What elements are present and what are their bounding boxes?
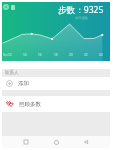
button[interactable]: 添加: [2, 77, 110, 90]
button[interactable]: Back: [80, 136, 92, 148]
staticText: 24: [99, 53, 103, 57]
staticText: 16: [38, 53, 42, 57]
staticText: 照顾多数: [19, 101, 41, 108]
staticText: 14: [23, 53, 27, 57]
staticText: 今日步数: [75, 16, 88, 20]
staticText: 20: [69, 53, 73, 57]
staticText: 联系人: [5, 70, 19, 76]
staticText: 添加: [18, 80, 29, 87]
button[interactable]: 照顾多数: [2, 96, 110, 112]
staticText: 6月12: [3, 53, 12, 57]
button[interactable]: Recents: [20, 136, 32, 148]
staticText: 22: [84, 53, 88, 57]
staticText: 步数：9325: [58, 4, 104, 16]
staticText: 18: [54, 53, 58, 57]
button[interactable]: Home: [50, 136, 62, 148]
